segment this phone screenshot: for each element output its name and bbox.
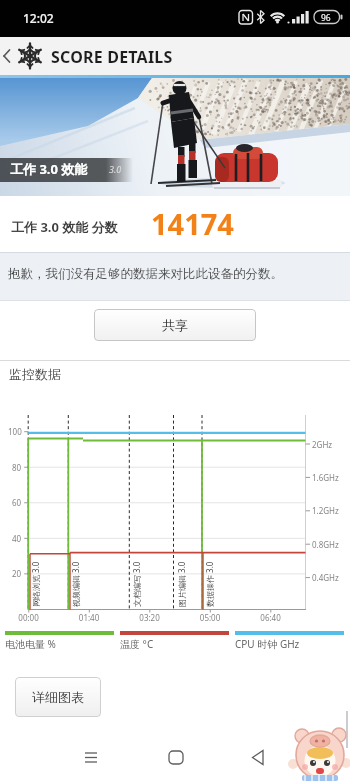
staticText: 工作 3.0 效能 分数: [11, 218, 118, 236]
staticText: 96: [321, 12, 331, 24]
staticText: 12:02: [23, 10, 54, 26]
staticText: 3.0: [109, 163, 122, 175]
staticText: CPU 时钟 GHz: [235, 637, 300, 651]
button[interactable]: [246, 745, 270, 769]
staticText: 14174: [151, 204, 234, 243]
staticText: 工作 3.0 效能: [10, 160, 88, 178]
button[interactable]: 共享: [94, 309, 256, 341]
button[interactable]: SCORE DETAILS: [0, 37, 350, 75]
staticText: 电池电量 %: [5, 637, 56, 651]
button[interactable]: [164, 745, 188, 769]
button[interactable]: [79, 745, 103, 769]
staticText: SCORE DETAILS: [51, 46, 173, 68]
staticText: 共享: [162, 317, 188, 333]
staticText: 监控数据: [9, 366, 61, 382]
staticText: 温度 °C: [120, 637, 154, 651]
staticText: 抱歉，我们没有足够的数据来对比此设备的分数。: [8, 266, 283, 282]
button[interactable]: 详细图表: [15, 677, 101, 717]
staticText: 详细图表: [32, 689, 84, 705]
